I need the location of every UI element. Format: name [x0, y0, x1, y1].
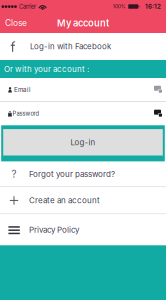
- button[interactable]: Log-in: [3, 129, 163, 155]
- staticText: Privacy Policy: [29, 225, 79, 235]
- staticText: Or with your account :: [4, 64, 89, 74]
- staticText: 16:12: [145, 3, 161, 10]
- staticText: Carrier: [19, 3, 36, 10]
- staticText: Close: [5, 18, 27, 28]
- button[interactable]: ?: [0, 162, 166, 187]
- button[interactable]: Privacy Policy: [0, 214, 166, 245]
- staticText: Email: [14, 86, 31, 94]
- button[interactable]: Close: [0, 13, 32, 33]
- staticText: Create an account: [29, 196, 100, 205]
- staticText: Log-in with Facebook: [30, 42, 111, 51]
- button[interactable]: Create an account: [0, 187, 166, 214]
- staticText: Forgot your password?: [29, 169, 115, 179]
- staticText: 100%: [113, 3, 126, 9]
- staticText: Password: [12, 110, 39, 117]
- button[interactable]: Log-in with Facebook: [0, 33, 166, 60]
- staticText: ?: [11, 168, 16, 180]
- staticText: Log-in: [70, 137, 95, 147]
- staticText: My account: [57, 17, 109, 29]
